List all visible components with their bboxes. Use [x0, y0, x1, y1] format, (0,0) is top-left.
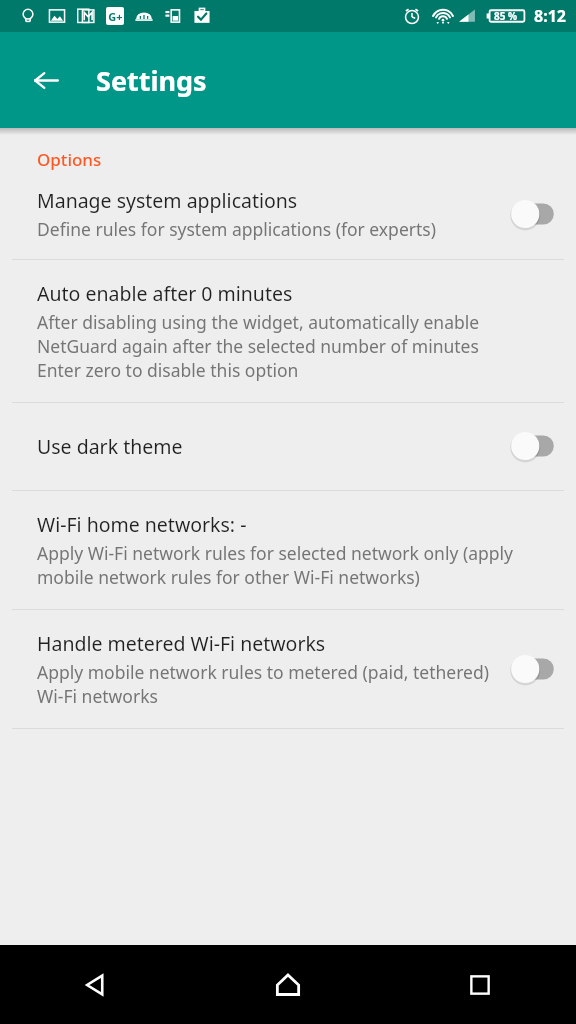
staticText: G+: [108, 9, 123, 24]
staticText: Settings: [96, 62, 207, 99]
button[interactable]: Back: [0, 945, 192, 1024]
button[interactable]: Toggle: [498, 647, 576, 691]
staticText: Auto enable after 0 minutes: [37, 280, 293, 307]
button[interactable]: Use dark theme: [0, 403, 576, 490]
staticText: Wi-Fi home networks: -: [37, 511, 247, 538]
staticText: Use dark theme: [37, 433, 183, 460]
button[interactable]: Toggle: [498, 424, 576, 468]
staticText: 85 %: [494, 9, 518, 23]
staticText: Handle metered Wi-Fi networks: [37, 630, 326, 657]
staticText: 8:12: [534, 5, 566, 27]
staticText: Apply Wi-Fi network rules for selected n…: [37, 541, 536, 589]
button[interactable]: Wi-Fi home networks: -: [0, 491, 576, 609]
staticText: Apply mobile network rules to metered (p…: [37, 660, 490, 708]
staticText: Manage system applications: [37, 187, 298, 214]
staticText: Options: [37, 148, 102, 171]
button[interactable]: Auto enable after 0 minutes: [0, 260, 576, 402]
staticText: Define rules for system applications (fo…: [37, 217, 436, 241]
staticText: After disabling using the widget, automa…: [37, 310, 536, 382]
button[interactable]: Manage system applications: [0, 171, 576, 259]
button[interactable]: Back: [22, 56, 70, 104]
button[interactable]: Home: [192, 945, 384, 1024]
button[interactable]: Recent apps: [384, 945, 576, 1024]
button[interactable]: Toggle: [498, 192, 576, 236]
button[interactable]: Handle metered Wi-Fi networks: [0, 610, 576, 728]
